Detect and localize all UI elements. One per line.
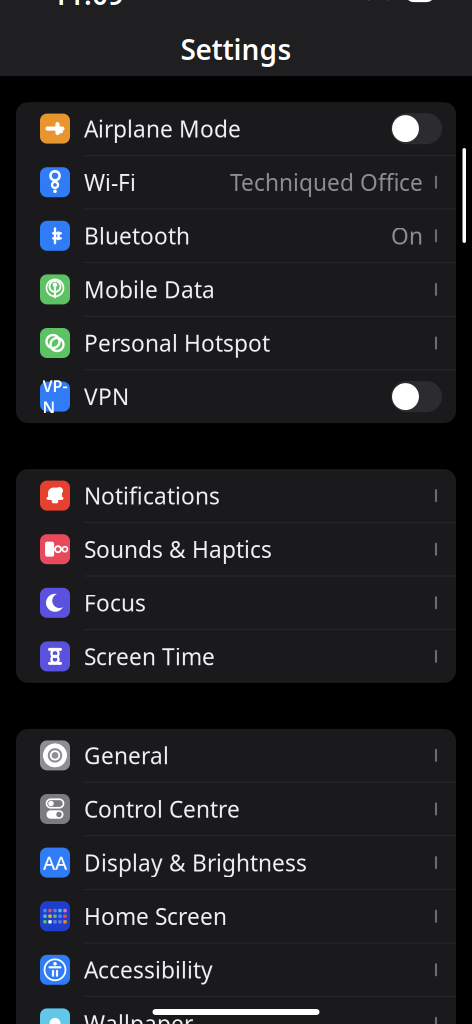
staticText: Settings — [180, 30, 291, 68]
button[interactable]: Airplane Mode — [16, 102, 456, 155]
staticText: Techniqued Office — [230, 167, 423, 197]
staticText: VPN — [84, 381, 129, 412]
button[interactable]: Screen Time — [16, 630, 456, 683]
staticText: Control Centre — [84, 794, 240, 824]
button[interactable]: Home Screen — [16, 890, 456, 943]
staticText: Notifications — [84, 480, 220, 511]
staticText: General — [84, 740, 169, 770]
staticText: Wi-Fi — [84, 167, 136, 197]
staticText: Accessibility — [84, 955, 213, 985]
button[interactable]: Wi-Fi — [16, 156, 456, 209]
staticText: Bluetooth — [84, 221, 190, 251]
staticText: Personal Hotspot — [84, 328, 270, 358]
staticText: AA — [43, 850, 67, 875]
button[interactable]: AA — [16, 836, 456, 889]
staticText: Display & Brightness — [84, 847, 307, 878]
staticText: Sounds & Haptics — [84, 534, 272, 564]
staticText: Home Screen — [84, 901, 227, 931]
button[interactable]: Focus — [16, 576, 456, 629]
staticText: On — [391, 221, 423, 251]
button[interactable]: Control Centre — [16, 782, 456, 835]
staticText: Wallpaper — [84, 1008, 193, 1024]
button[interactable]: Wallpaper — [16, 997, 456, 1024]
staticText: Focus — [84, 588, 146, 618]
button[interactable]: General — [16, 729, 456, 782]
button[interactable]: Notifications — [16, 469, 456, 522]
button[interactable]: Bluetooth — [16, 209, 456, 262]
staticText: Screen Time — [84, 641, 215, 671]
staticText: Mobile Data — [84, 274, 215, 304]
button[interactable]: Mobile Data — [16, 263, 456, 316]
staticText: Airplane Mode — [84, 113, 241, 144]
button[interactable]: Personal Hotspot — [16, 316, 456, 369]
staticText: 11:09 — [52, 0, 124, 13]
button[interactable]: Sounds & Haptics — [16, 523, 456, 576]
staticText: 66 — [412, 0, 428, 4]
button[interactable]: VPN — [16, 370, 456, 423]
staticText: VPN — [42, 375, 67, 418]
button[interactable]: Accessibility — [16, 943, 456, 996]
